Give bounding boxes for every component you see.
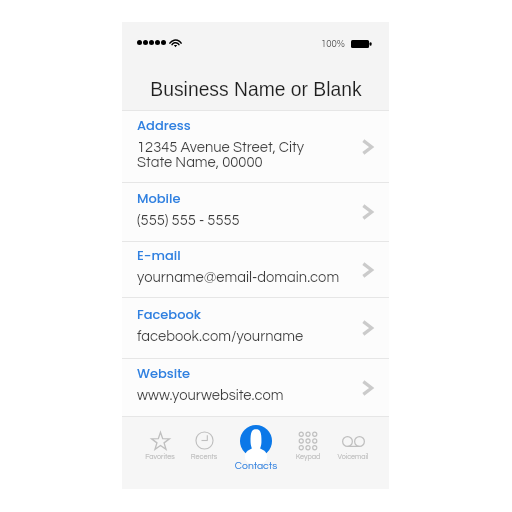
staticText: 12345 Avenue Street, City: [137, 140, 305, 155]
staticText: Favorites: [133, 453, 187, 460]
button[interactable]: E-mail: [122, 242, 389, 297]
staticText: Mobile: [137, 189, 181, 207]
staticText: www.yourwebsite.com: [137, 388, 284, 403]
button[interactable]: Mobile: [122, 183, 389, 241]
staticText: Keypad: [281, 453, 335, 460]
button[interactable]: Facebook: [122, 298, 389, 358]
staticText: Business Name or Blank: [150, 79, 362, 101]
button[interactable]: Recents: [177, 417, 231, 461]
staticText: Recents: [177, 453, 231, 460]
button[interactable]: Keypad: [281, 417, 335, 461]
button[interactable]: Voicemail: [326, 417, 380, 461]
staticText: Voicemail: [326, 453, 380, 460]
button[interactable]: Favorites: [133, 417, 187, 461]
staticText: Facebook: [137, 305, 201, 323]
staticText: facebook.com/yourname: [137, 329, 304, 344]
staticText: State Name, 00000: [137, 155, 263, 170]
staticText: Address: [137, 116, 191, 134]
staticText: E-mail: [137, 246, 181, 264]
staticText: Contacts: [229, 460, 283, 471]
button[interactable]: Contacts: [229, 417, 283, 473]
staticText: 100%: [321, 39, 345, 49]
staticText: (555) 555 - 5555: [137, 213, 240, 228]
staticText: yourname@email-domain.com: [137, 270, 340, 285]
staticText: Website: [137, 364, 191, 382]
button[interactable]: Address: [122, 111, 389, 182]
button[interactable]: Website: [122, 359, 389, 416]
